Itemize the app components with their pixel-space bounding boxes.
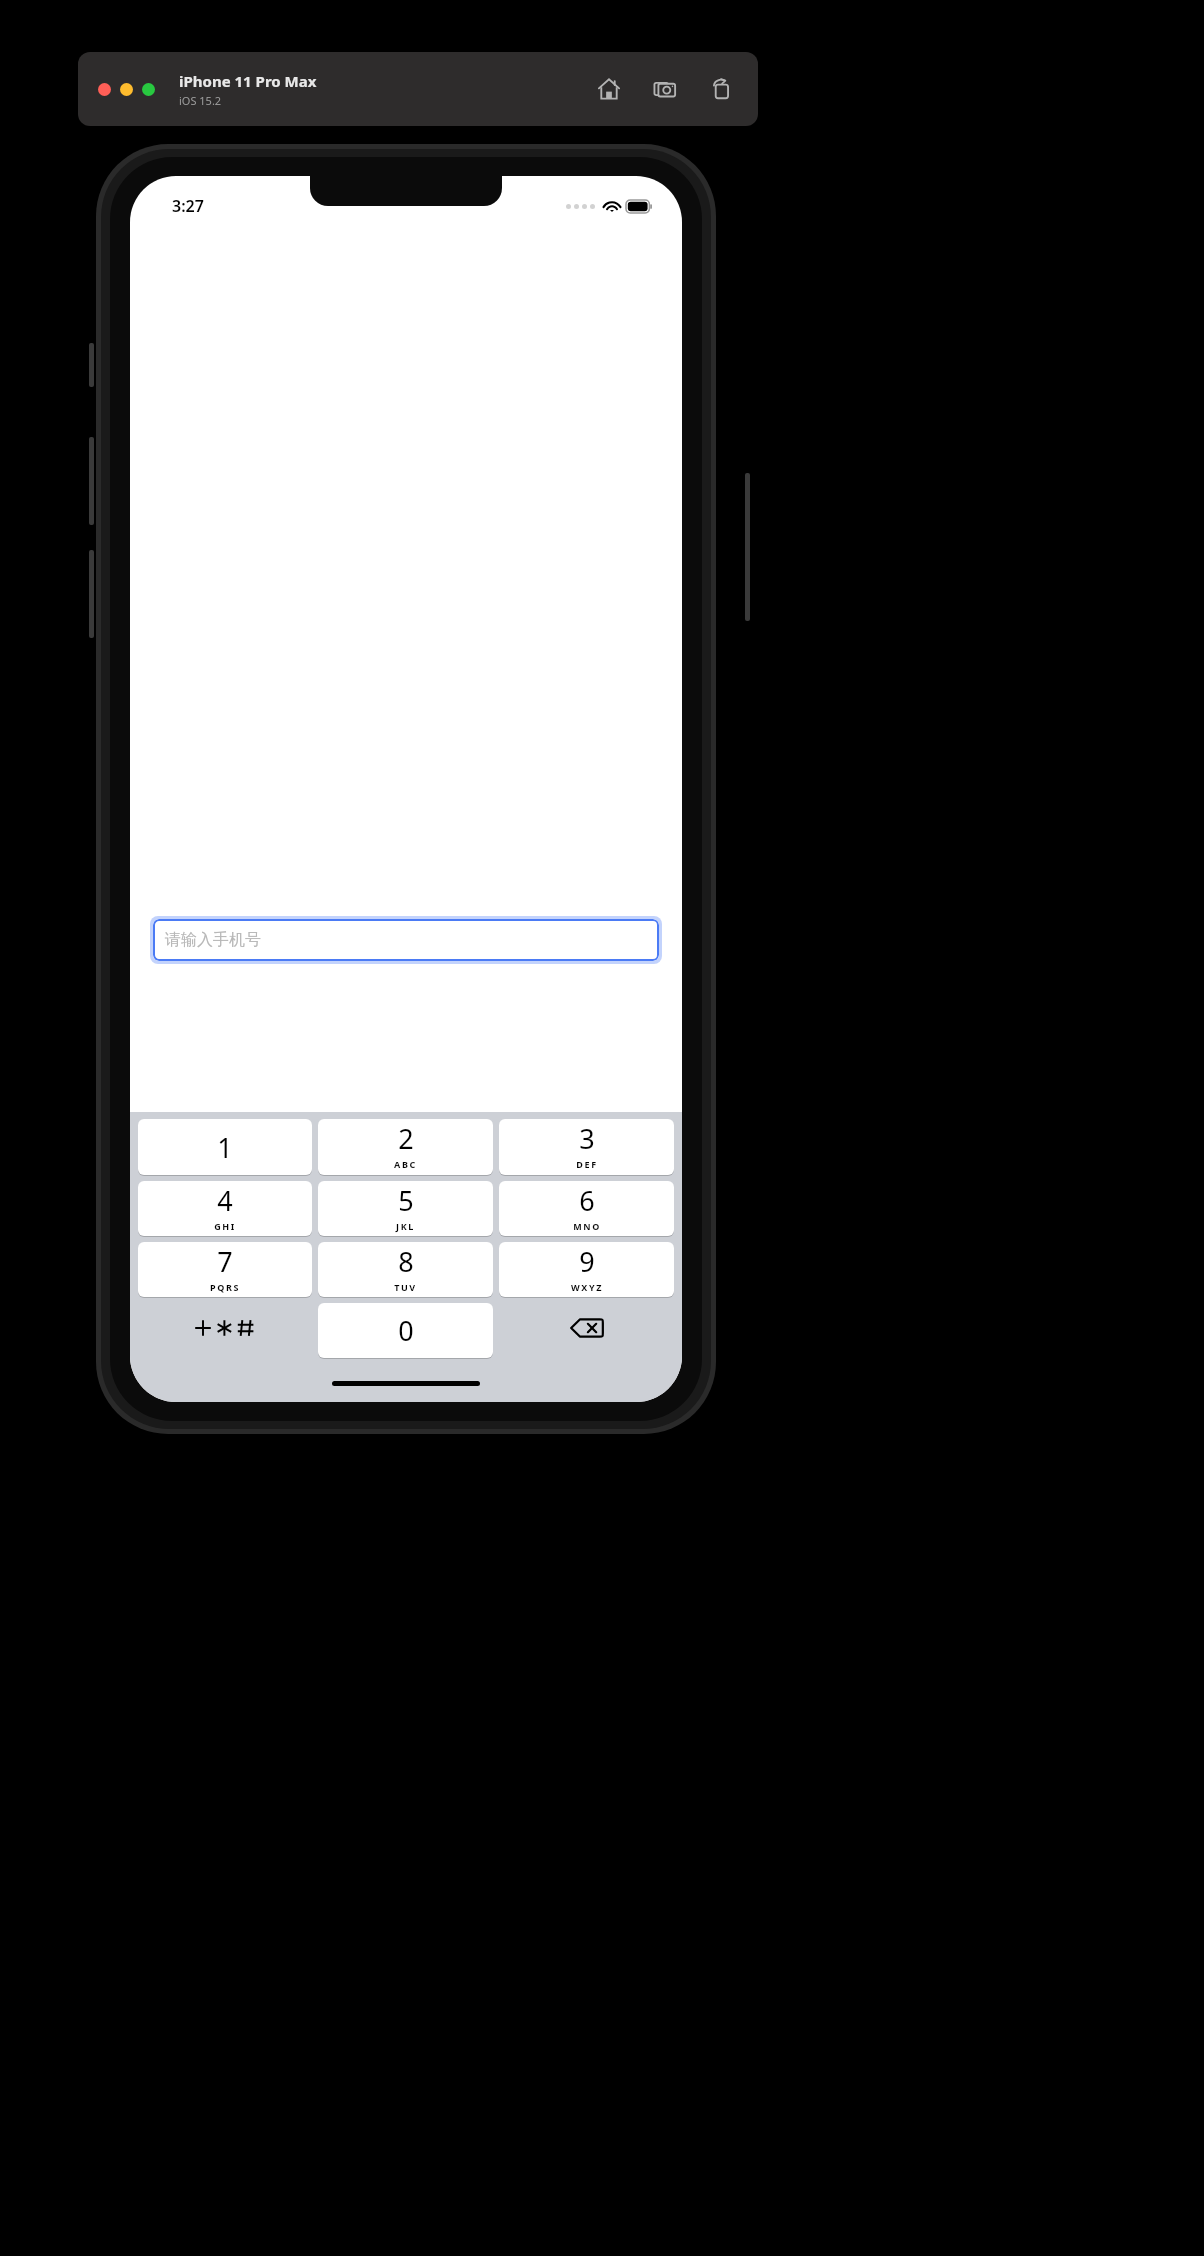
button[interactable] — [138, 1303, 312, 1358]
staticText: MNO — [573, 1220, 601, 1232]
button[interactable]: 4 — [138, 1181, 312, 1236]
staticText: DEF — [576, 1158, 598, 1170]
staticText: PQRS — [210, 1281, 240, 1293]
staticText: JKL — [396, 1220, 415, 1232]
staticText: WXYZ — [571, 1281, 603, 1293]
staticText: 6 — [579, 1182, 595, 1219]
staticText: iPhone 11 Pro Max — [179, 71, 317, 91]
staticText: GHI — [214, 1220, 236, 1232]
button[interactable]: Home — [592, 72, 626, 106]
button[interactable]: Backspace — [499, 1303, 674, 1358]
staticText: iOS 15.2 — [179, 93, 222, 108]
staticText: ABC — [394, 1158, 417, 1170]
button[interactable]: 请输入手机号 — [153, 919, 659, 961]
staticText: 0 — [398, 1312, 414, 1349]
staticText: 9 — [579, 1243, 595, 1280]
staticText: 请输入手机号 — [165, 930, 261, 950]
staticText: 8 — [398, 1243, 414, 1280]
button[interactable]: 0 — [318, 1303, 493, 1358]
staticText: 7 — [217, 1243, 233, 1280]
staticText: 4 — [217, 1182, 233, 1219]
staticText: 3 — [579, 1120, 595, 1157]
button[interactable]: 9 — [499, 1242, 674, 1297]
staticText: 5 — [398, 1182, 414, 1219]
button[interactable]: 1 — [138, 1119, 312, 1175]
button[interactable]: Screenshot — [648, 72, 682, 106]
staticText: 3:27 — [172, 195, 204, 217]
button[interactable]: 2 — [318, 1119, 493, 1175]
button[interactable] — [120, 83, 133, 96]
button[interactable] — [98, 83, 111, 96]
button[interactable]: 3 — [499, 1119, 674, 1175]
staticText: 2 — [398, 1120, 414, 1157]
staticText: 1 — [217, 1129, 233, 1166]
button[interactable]: 8 — [318, 1242, 493, 1297]
button[interactable]: 5 — [318, 1181, 493, 1236]
button[interactable]: 6 — [499, 1181, 674, 1236]
staticText: TUV — [394, 1281, 417, 1293]
button[interactable]: 7 — [138, 1242, 312, 1297]
button[interactable] — [142, 83, 155, 96]
button[interactable]: Rotate — [704, 72, 738, 106]
